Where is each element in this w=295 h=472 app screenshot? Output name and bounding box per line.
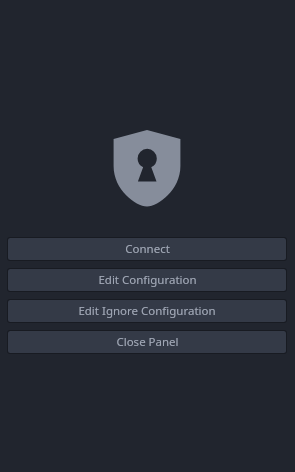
staticText: Close Panel [116,334,179,350]
staticText: Edit Configuration [98,272,197,288]
button[interactable]: Edit Ignore Configuration [8,300,286,322]
staticText: Edit Ignore Configuration [78,303,216,319]
button[interactable]: Edit Configuration [8,269,286,291]
button[interactable]: Connect [8,238,286,260]
staticText: Connect [125,241,170,257]
button[interactable]: Close Panel [8,331,286,353]
